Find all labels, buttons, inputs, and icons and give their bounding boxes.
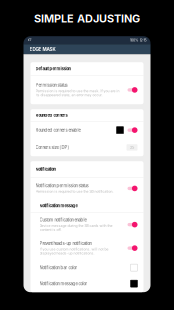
button[interactable]: Permission status [30,76,143,104]
staticText: EDGE MASK [29,46,55,52]
staticText: 12:15 [139,38,146,42]
staticText: Permission is required to use the SB not… [35,189,113,194]
staticText: Permission is required to use the mask. … [35,89,119,97]
staticText: 100% [130,38,138,42]
staticText: Default permission [35,66,70,71]
staticText: Notification permission status [35,183,88,188]
staticText: SIMPLE ADJUSTING [34,12,140,25]
staticText: Notification message color [39,281,87,286]
staticText: 25 [130,145,134,150]
staticText: Corners size [DP] [35,145,69,150]
staticText: Notification bar color [39,265,77,270]
staticText: If you use custom notifications, will no… [39,247,108,255]
button[interactable]: Notification bar color [30,260,143,276]
button[interactable]: Prevent heads-up notification [30,237,143,260]
button[interactable]: Notification permission status [30,178,143,199]
staticText: Custom notification enable [39,217,86,222]
staticText: Rounded corners [35,113,67,118]
staticText: Permission status [35,83,67,88]
staticText: Prevent heads-up notification [39,241,91,246]
staticText: K7 [27,38,31,42]
button[interactable]: Custom notification enable [30,213,143,237]
button[interactable]: Corners size [DP] [30,139,143,156]
staticText: Rounded corners enable [35,128,80,133]
staticText: Device message during the SB cards with … [39,224,112,232]
staticText: Notification [35,167,55,172]
staticText: Notification message [39,203,77,208]
button[interactable]: Rounded corners enable [30,122,143,139]
button[interactable]: Notification message color [30,276,143,292]
